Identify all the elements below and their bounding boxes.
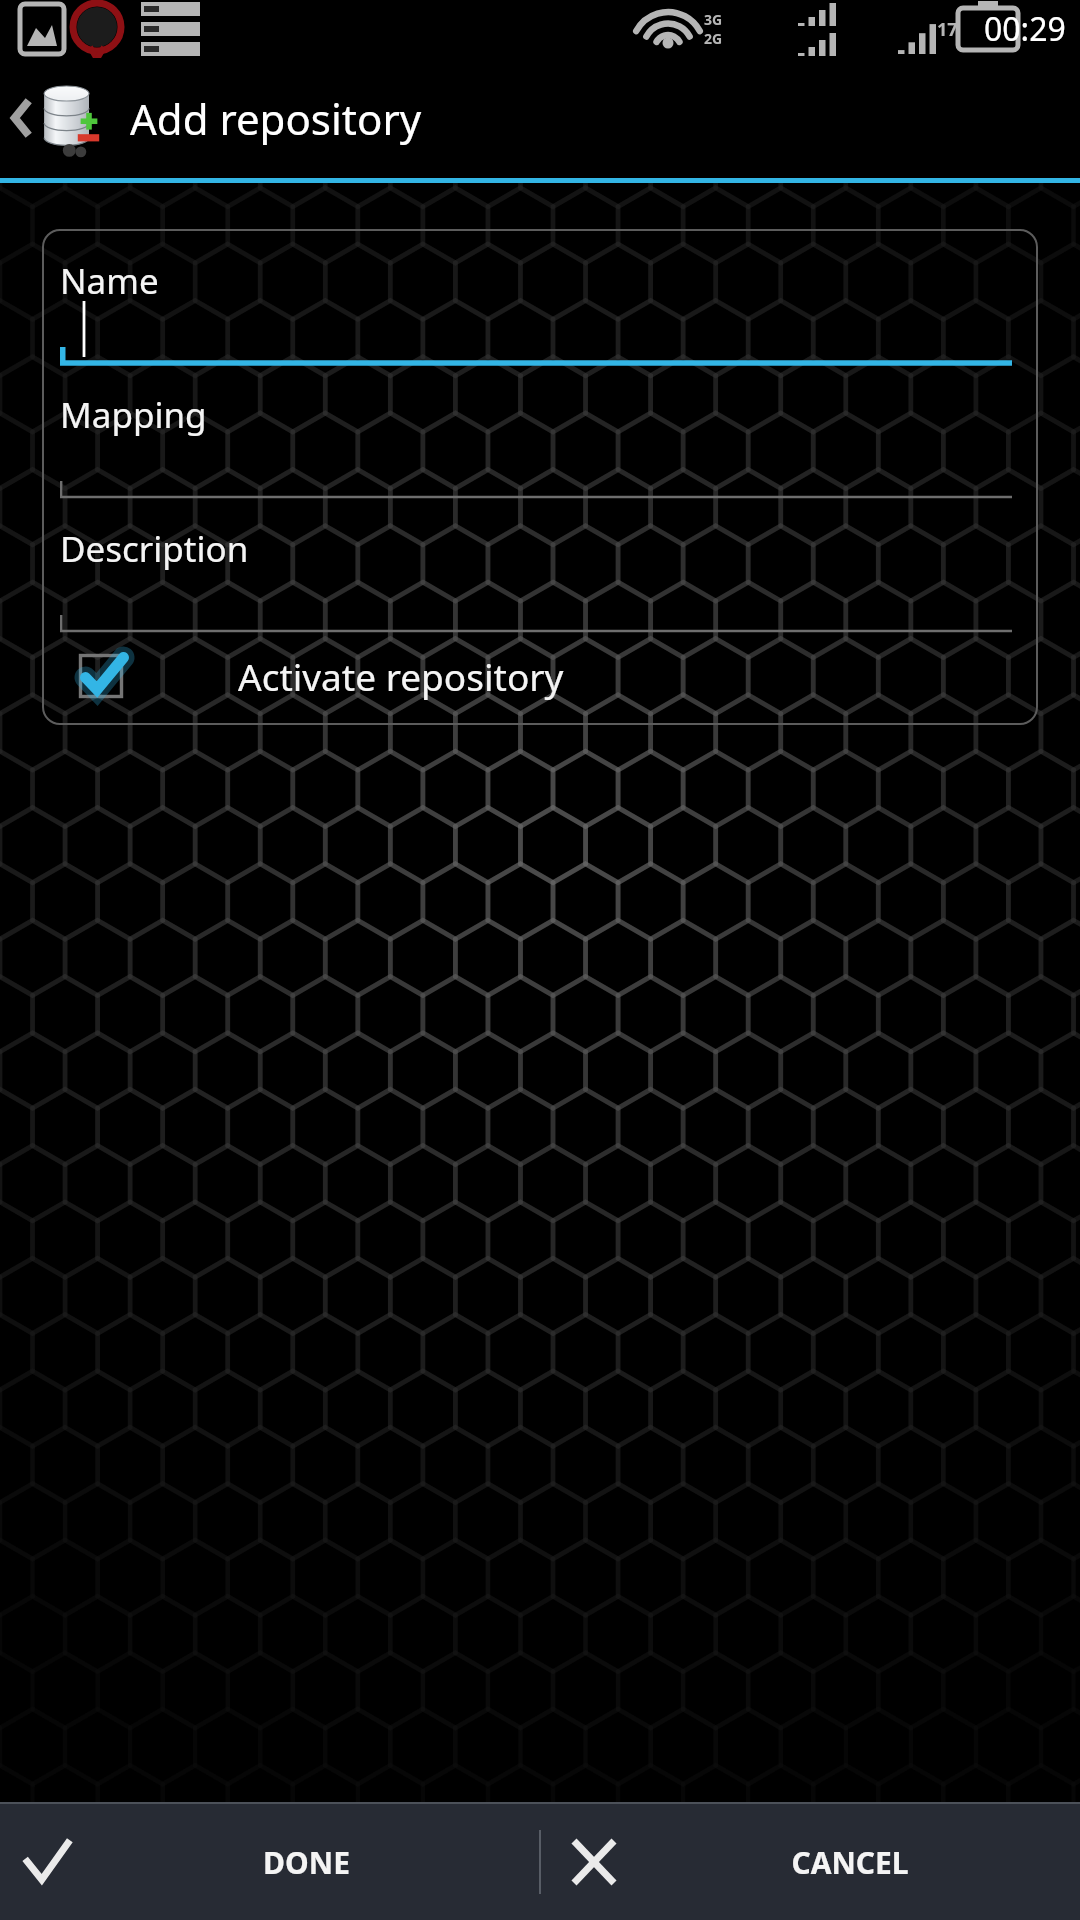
staticText: 17: [937, 17, 958, 42]
button[interactable]: [60, 439, 1012, 501]
staticText: Name: [60, 257, 159, 305]
staticText: 00:29: [984, 7, 1066, 51]
staticText: Mapping: [60, 391, 207, 439]
staticText: Activate repository: [238, 651, 564, 701]
button[interactable]: Navigate up: [0, 58, 110, 178]
staticText: 2G: [704, 29, 723, 48]
button[interactable]: CANCEL: [541, 1804, 1080, 1920]
staticText: DONE: [263, 1842, 350, 1883]
staticText: Add repository: [130, 90, 422, 147]
button[interactable]: DONE: [0, 1804, 539, 1920]
button[interactable]: [60, 305, 1012, 367]
staticText: Description: [60, 525, 249, 573]
button[interactable]: [60, 573, 1012, 635]
staticText: 3G: [704, 10, 723, 29]
staticText: CANCEL: [791, 1842, 909, 1883]
button[interactable]: Activate repository: [60, 651, 1012, 701]
